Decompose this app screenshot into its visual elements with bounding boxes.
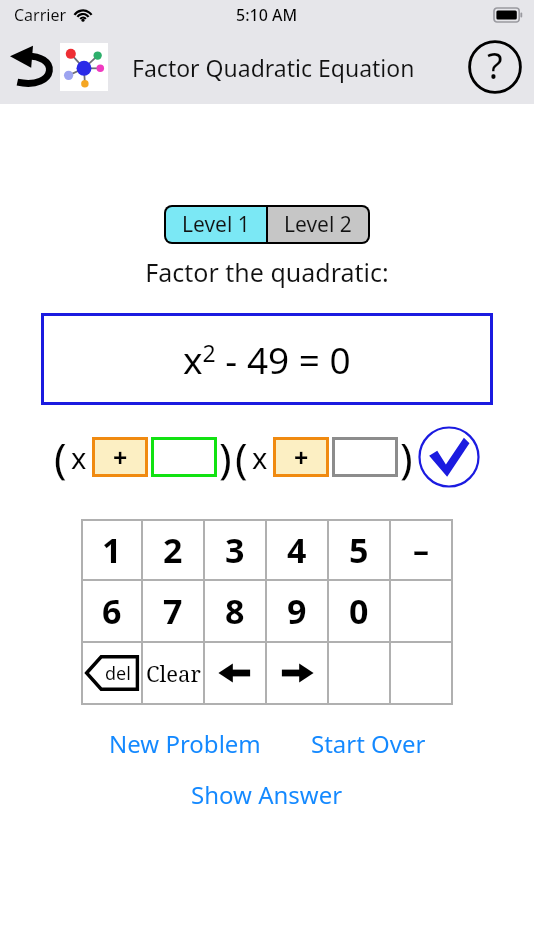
button[interactable] [332, 437, 398, 477]
staticText: 8 [225, 588, 245, 634]
staticText: ? [487, 41, 503, 90]
button[interactable]: Start Over [307, 724, 430, 763]
staticText: Carrier [14, 4, 67, 26]
staticText: 1 [102, 527, 122, 573]
button[interactable]: Level 2 [268, 207, 368, 242]
staticText: Level 2 [284, 210, 352, 239]
staticText: 4 [287, 527, 307, 573]
button[interactable]: 9 [267, 581, 327, 641]
button[interactable]: Back [6, 40, 60, 94]
staticText: 5:10 AM [236, 4, 298, 26]
button[interactable]: 7 [143, 581, 203, 641]
button[interactable]: 8 [205, 581, 265, 641]
staticText: + [113, 440, 128, 474]
button[interactable]: Move right [267, 643, 327, 703]
staticText: Level 1 [182, 210, 250, 239]
button[interactable]: + [92, 437, 148, 477]
button[interactable]: Level 1 [166, 207, 266, 242]
button[interactable]: + [273, 437, 329, 477]
staticText: Factor Quadratic Equation [132, 52, 415, 83]
staticText: 9 [287, 588, 307, 634]
button[interactable]: 5 [329, 521, 389, 579]
staticText: Clear [146, 658, 201, 688]
button[interactable]: 0 [329, 581, 389, 641]
staticText: 6 [102, 588, 122, 634]
staticText: del [105, 661, 131, 686]
staticText: Start Over [311, 727, 426, 760]
other: Move left [205, 643, 265, 703]
staticText: x [71, 438, 87, 477]
staticText: ) [400, 429, 413, 486]
staticText: 7 [163, 588, 183, 634]
button[interactable]: Clear [143, 643, 203, 703]
other: Delete [83, 643, 141, 703]
button[interactable]: Check answer [418, 426, 480, 488]
button[interactable]: 6 [83, 581, 141, 641]
staticText: 5 [349, 527, 369, 573]
staticText: ( [54, 429, 67, 486]
staticText: ) [219, 429, 232, 486]
other: Move right [267, 643, 327, 703]
button[interactable]: 4 [267, 521, 327, 579]
staticText: + [294, 440, 309, 474]
button[interactable]: New Problem [105, 724, 265, 763]
staticText: – [413, 528, 430, 572]
staticText: Factor the quadratic: [0, 255, 534, 289]
staticText: x2 - 49 = 0 [183, 334, 351, 384]
staticText: x [252, 438, 268, 477]
staticText: 3 [225, 527, 245, 573]
button[interactable]: Show Answer [187, 775, 347, 814]
staticText: 0 [349, 588, 369, 634]
button[interactable] [151, 437, 217, 477]
staticText: ( [235, 429, 248, 486]
staticText: New Problem [109, 727, 261, 760]
button[interactable]: App icon [60, 43, 108, 91]
button[interactable]: 1 [83, 521, 141, 579]
button[interactable]: Delete [83, 643, 141, 703]
staticText: 2 [163, 527, 183, 573]
button[interactable]: Move left [205, 643, 265, 703]
button[interactable]: 3 [205, 521, 265, 579]
button[interactable]: – [391, 521, 451, 579]
button[interactable]: Help [468, 40, 522, 94]
staticText: Show Answer [191, 778, 343, 811]
button[interactable]: 2 [143, 521, 203, 579]
